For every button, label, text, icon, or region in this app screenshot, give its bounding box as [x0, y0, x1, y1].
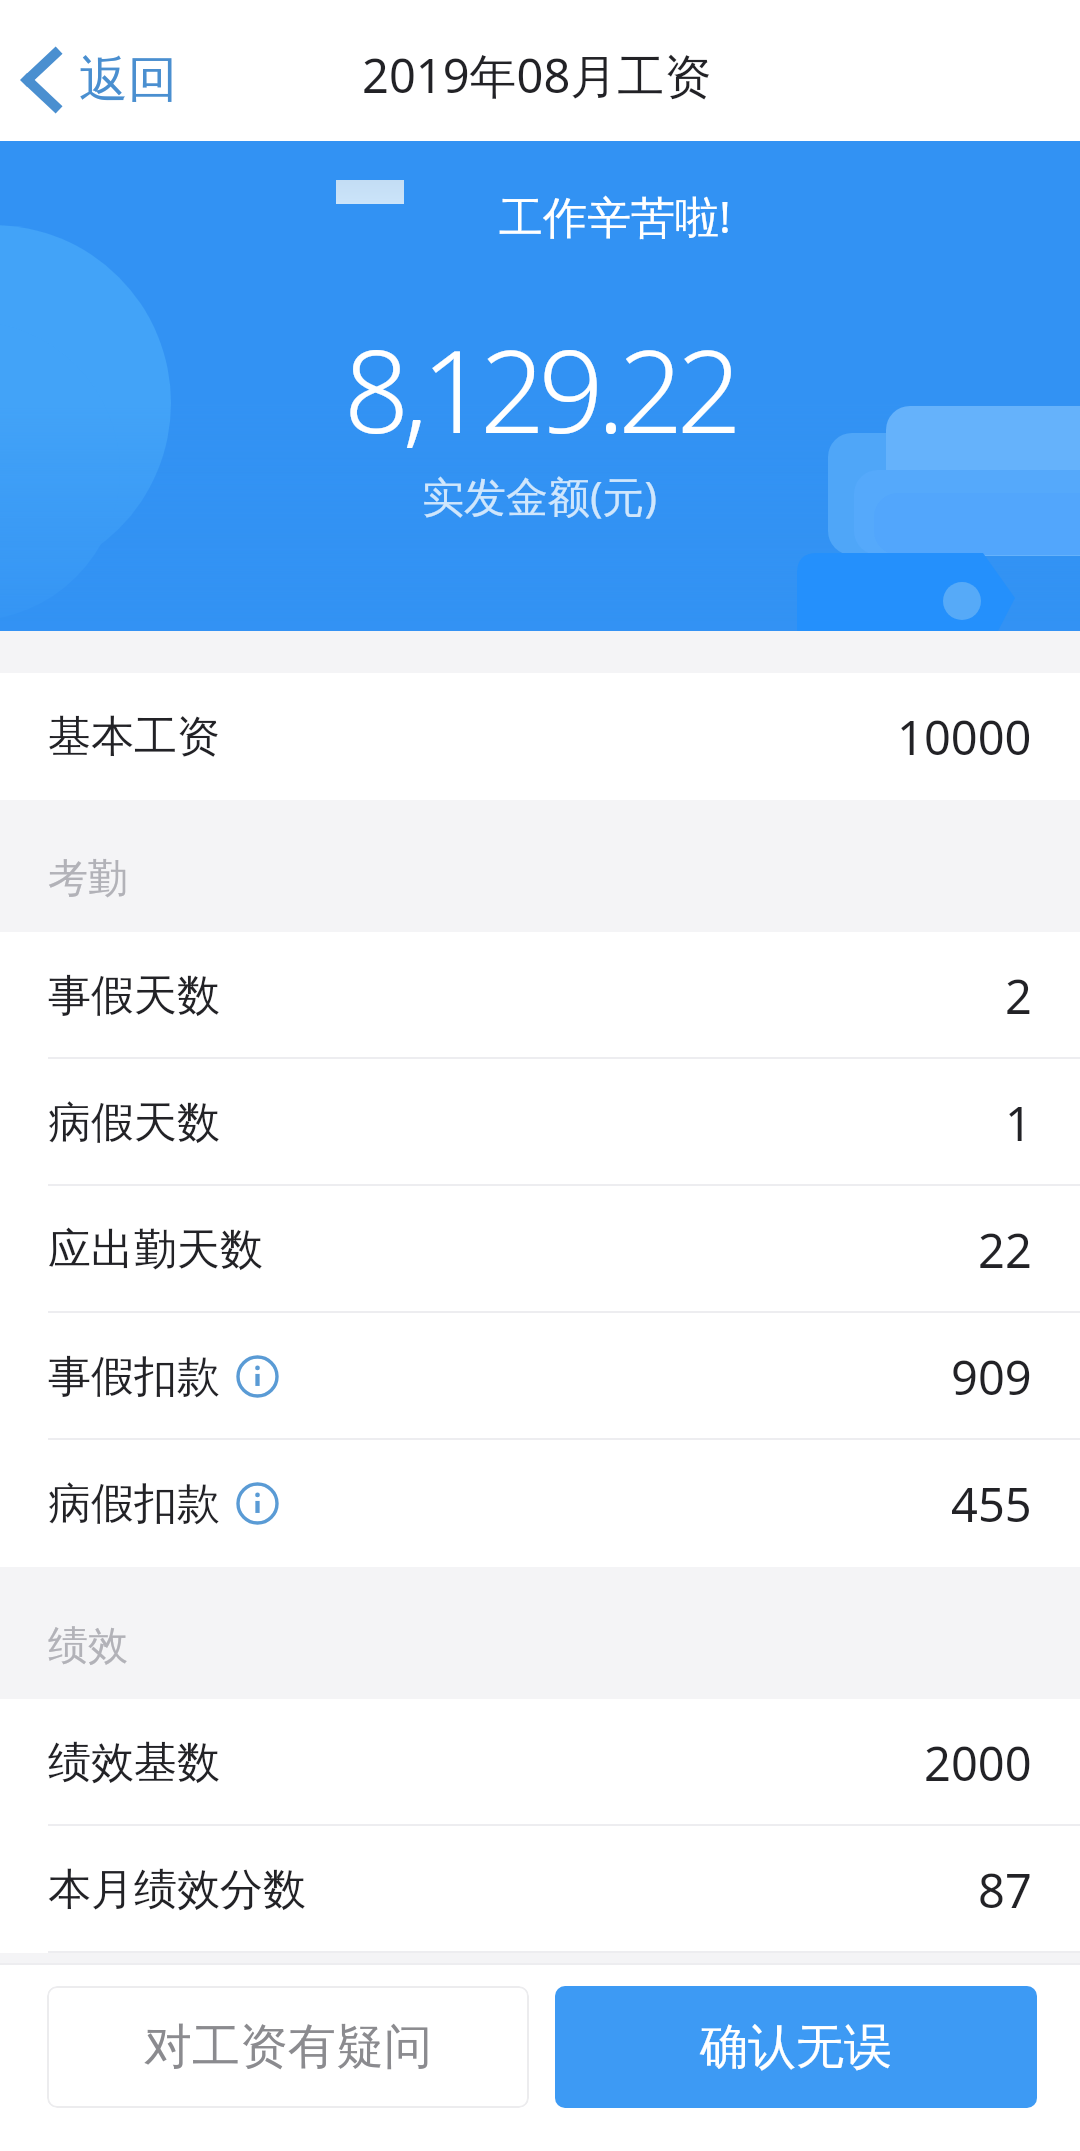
staticText: 对工资有疑问: [144, 2017, 432, 2077]
staticText: 8,129.22: [344, 311, 736, 466]
staticText: 返回: [79, 49, 177, 111]
button[interactable]: 返回: [0, 0, 201, 141]
staticText: 实发金额(元): [422, 467, 658, 524]
staticText: 22: [978, 1218, 1032, 1282]
button[interactable]: 绩效基数: [0, 1699, 1080, 1826]
staticText: 本月绩效分数: [48, 1863, 306, 1917]
button[interactable]: 确认无误: [555, 1986, 1037, 2108]
staticText: 1: [1005, 1091, 1032, 1155]
button[interactable]: 病假扣款: [0, 1440, 1080, 1567]
staticText: 基本工资: [48, 710, 220, 764]
staticText: 2: [1005, 964, 1032, 1028]
staticText: 455: [951, 1472, 1032, 1536]
staticText: 10000: [897, 705, 1032, 769]
staticText: 事假扣款: [48, 1350, 220, 1404]
other: 说明: [236, 1355, 279, 1398]
staticText: 考勤: [48, 853, 128, 903]
button[interactable]: 病假天数: [0, 1059, 1080, 1186]
button[interactable]: 本月绩效分数: [0, 1826, 1080, 1953]
staticText: 病假扣款: [48, 1477, 220, 1531]
staticText: 87: [978, 1858, 1032, 1922]
staticText: 工作辛苦啦!: [499, 186, 731, 246]
staticText: 病假天数: [48, 1096, 220, 1150]
staticText: 909: [951, 1345, 1032, 1409]
button[interactable]: 应出勤天数: [0, 1186, 1080, 1313]
staticText: 绩效: [48, 1620, 128, 1670]
staticText: 2000: [924, 1731, 1032, 1795]
staticText: 绩效基数: [48, 1736, 220, 1790]
staticText: 2019年08月工资: [362, 43, 712, 107]
button[interactable]: 基本工资: [0, 673, 1080, 800]
button[interactable]: 事假扣款: [0, 1313, 1080, 1440]
button[interactable]: 对工资有疑问: [47, 1986, 529, 2108]
other: 说明: [236, 1482, 279, 1525]
button[interactable]: 事假天数: [0, 932, 1080, 1059]
staticText: 应出勤天数: [48, 1223, 263, 1277]
staticText: 事假天数: [48, 969, 220, 1023]
staticText: 确认无误: [700, 2017, 892, 2077]
